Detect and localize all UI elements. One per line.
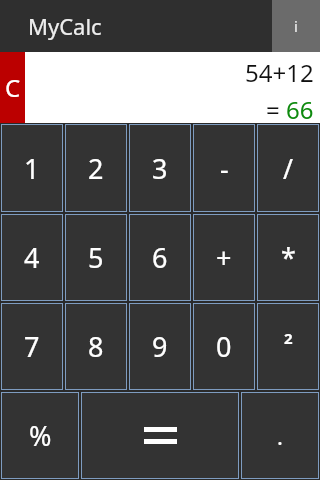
staticText: / [283,150,294,187]
staticText: 9 [152,328,168,365]
button[interactable]: 1 [1,124,63,212]
button[interactable]: % [1,392,79,479]
staticText: 4 [24,239,40,276]
button[interactable]: 8 [65,303,127,390]
button[interactable]: 7 [1,303,63,390]
staticText: = [266,93,286,123]
staticText: 3 [152,150,168,187]
staticText: C [5,71,21,104]
button[interactable]: / [257,124,319,212]
staticText: 66 [286,93,314,123]
button[interactable]: Equals [81,392,239,479]
staticText: 5 [88,239,104,276]
button[interactable]: 9 [129,303,191,390]
staticText: . [277,421,283,451]
button[interactable]: 2 [65,124,127,212]
staticText: 0 [216,328,232,365]
button[interactable]: 6 [129,214,191,301]
button[interactable]: C [0,52,25,123]
button[interactable]: + [193,214,255,301]
button[interactable]: Info [272,0,320,52]
staticText: % [29,417,52,454]
button[interactable]: * [257,214,319,301]
button[interactable]: 4 [1,214,63,301]
button[interactable]: 5 [65,214,127,301]
button[interactable]: - [193,124,255,212]
staticText: 1 [24,150,40,187]
staticText: 2 [284,328,293,348]
staticText: 8 [88,328,104,365]
staticText: i [294,16,298,36]
staticText: 7 [24,328,40,365]
button[interactable]: 2 [257,303,319,390]
staticText: * [281,239,296,276]
staticText: 2 [88,150,104,187]
button[interactable]: 0 [193,303,255,390]
staticText: 6 [152,239,168,276]
staticText: 54+12 [245,56,314,89]
button[interactable]: . [241,392,319,479]
staticText: + [216,239,232,276]
staticText: - [220,150,229,187]
button[interactable]: 3 [129,124,191,212]
staticText: MyCalc [28,11,102,41]
